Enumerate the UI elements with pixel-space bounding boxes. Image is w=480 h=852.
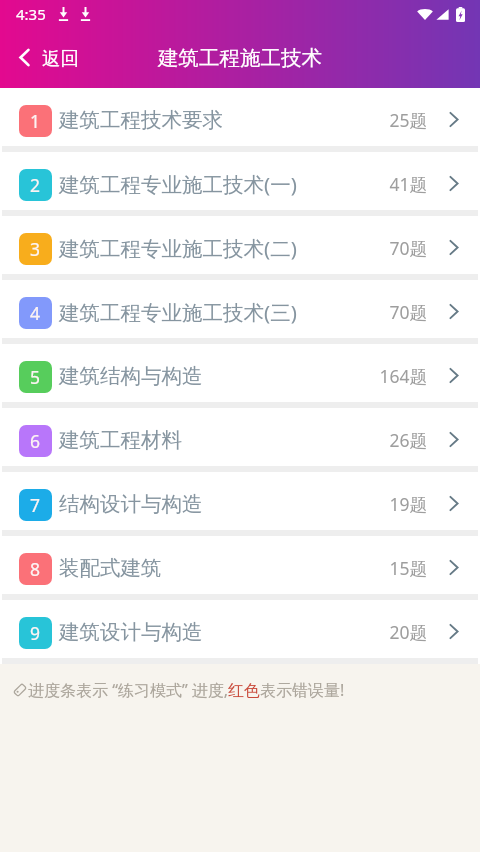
staticText: 返回 <box>42 47 79 70</box>
staticText: 结构设计与构造 <box>59 491 203 517</box>
button[interactable]: 6 <box>0 413 480 466</box>
staticText: 建筑工程施工技术 <box>158 45 322 71</box>
staticText: 70题 <box>357 300 427 324</box>
staticText: 26题 <box>357 428 427 452</box>
other: 打开 <box>449 175 459 192</box>
staticText: 建筑工程技术要求 <box>59 107 223 133</box>
staticText: 1 <box>30 109 41 133</box>
staticText: 41题 <box>357 172 427 196</box>
other: 打开 <box>449 559 459 576</box>
staticText: 建筑工程专业施工技术(二) <box>59 234 297 262</box>
staticText: 6 <box>30 429 41 453</box>
staticText: 4 <box>30 301 41 325</box>
other: 打开 <box>449 495 459 512</box>
staticText: 3 <box>30 237 41 261</box>
button[interactable]: 2 <box>0 157 480 210</box>
other: 打开 <box>449 367 459 384</box>
staticText: 8 <box>30 557 41 581</box>
button[interactable]: 返回 <box>0 37 95 80</box>
staticText: 20题 <box>357 620 427 644</box>
staticText: 4:35 <box>16 4 46 24</box>
other: 打开 <box>449 431 459 448</box>
staticText: 15题 <box>357 556 427 580</box>
other: 打开 <box>449 303 459 320</box>
staticText: 建筑工程专业施工技术(一) <box>59 170 297 198</box>
staticText: 19题 <box>357 492 427 516</box>
staticText: 25题 <box>357 108 427 132</box>
staticText: 7 <box>30 493 41 517</box>
button[interactable]: 3 <box>0 221 480 274</box>
staticText: 装配式建筑 <box>59 555 162 581</box>
other: 打开 <box>449 623 459 640</box>
staticText: 建筑工程专业施工技术(三) <box>59 298 297 326</box>
staticText: 2 <box>30 173 41 197</box>
staticText: 建筑结构与构造 <box>59 363 203 389</box>
other: 打开 <box>449 111 459 128</box>
staticText: 进度条表示 “练习模式” 进度,红色表示错误量! <box>28 679 345 701</box>
staticText: 5 <box>30 365 41 389</box>
other: 打开 <box>449 239 459 256</box>
staticText: 164题 <box>357 364 427 388</box>
button[interactable]: 9 <box>0 605 480 658</box>
staticText: 9 <box>30 621 41 645</box>
button[interactable]: 8 <box>0 541 480 594</box>
button[interactable]: 4 <box>0 285 480 338</box>
staticText: 70题 <box>357 236 427 260</box>
staticText: 建筑设计与构造 <box>59 619 203 645</box>
button[interactable]: 1 <box>0 93 480 146</box>
button[interactable]: 7 <box>0 477 480 530</box>
button[interactable]: 5 <box>0 349 480 402</box>
staticText: 建筑工程材料 <box>59 427 182 453</box>
